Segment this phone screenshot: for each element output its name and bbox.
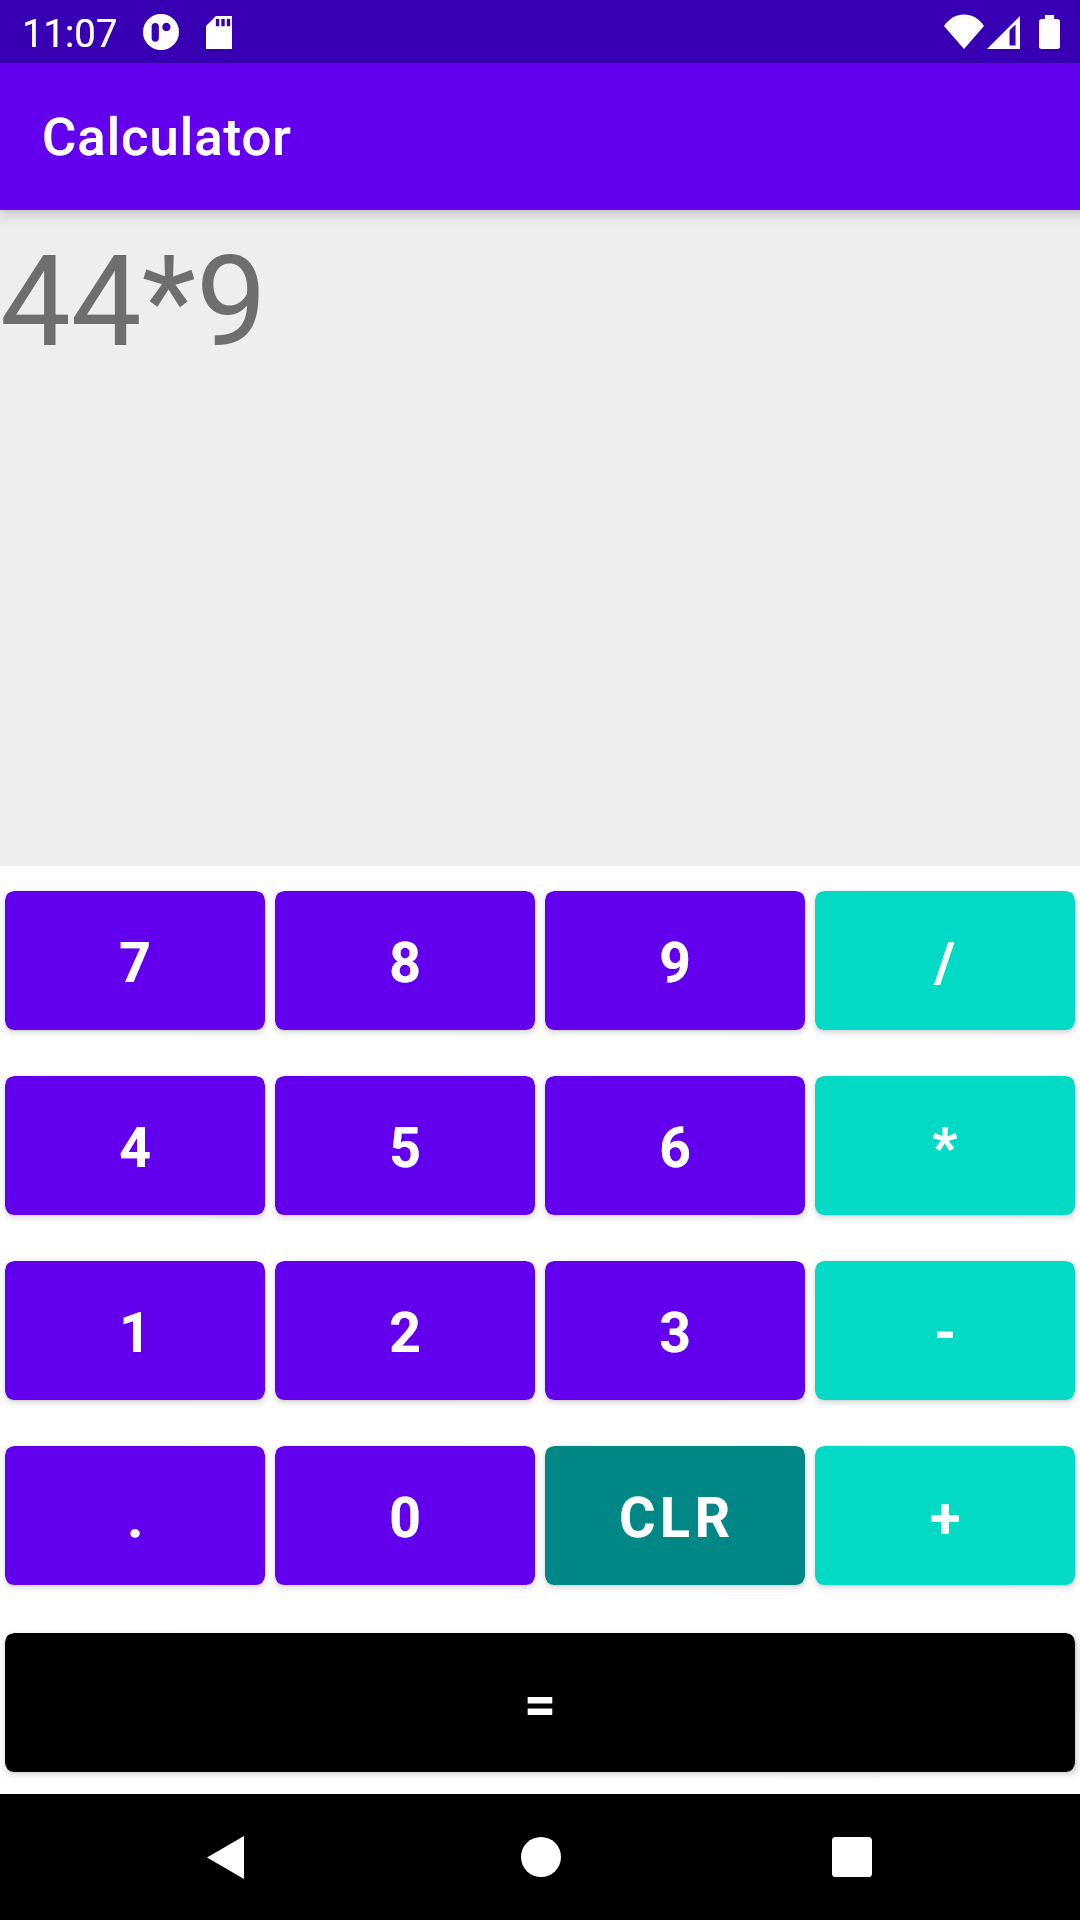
button[interactable]: / <box>815 891 1075 1030</box>
button[interactable]: Recent apps <box>698 1794 1013 1920</box>
staticText: 11:07 <box>22 11 118 56</box>
staticText: + <box>930 1486 965 1551</box>
staticText: 44*9 <box>0 228 267 376</box>
staticText: 9 <box>659 931 696 996</box>
button[interactable]: 7 <box>5 891 265 1030</box>
button[interactable]: + <box>815 1446 1075 1585</box>
button[interactable]: Back <box>67 1794 383 1920</box>
staticText: * <box>932 1116 962 1181</box>
button[interactable]: * <box>815 1076 1075 1215</box>
button[interactable]: = <box>5 1633 1075 1772</box>
staticText: 5 <box>389 1116 426 1181</box>
button[interactable]: Home <box>383 1794 698 1920</box>
button[interactable]: 6 <box>545 1076 805 1215</box>
button[interactable]: 3 <box>545 1261 805 1400</box>
staticText: 3 <box>659 1301 696 1366</box>
staticText: 6 <box>659 1116 696 1181</box>
staticText: 4 <box>119 1116 156 1181</box>
staticText: = <box>524 1673 561 1738</box>
button[interactable]: 1 <box>5 1261 265 1400</box>
button[interactable]: 8 <box>275 891 535 1030</box>
staticText: 8 <box>389 931 426 996</box>
staticText: 7 <box>119 931 156 996</box>
staticText: / <box>934 931 960 996</box>
button[interactable]: 9 <box>545 891 805 1030</box>
staticText: Calculator <box>42 106 292 168</box>
button[interactable]: - <box>815 1261 1075 1400</box>
button[interactable]: 2 <box>275 1261 535 1400</box>
button[interactable]: CLR <box>545 1446 805 1585</box>
staticText: 2 <box>389 1301 426 1366</box>
staticText: CLR <box>619 1486 735 1551</box>
button[interactable]: 4 <box>5 1076 265 1215</box>
staticText: 1 <box>119 1301 156 1366</box>
staticText: 0 <box>389 1486 426 1551</box>
staticText: . <box>127 1486 148 1551</box>
button[interactable]: 0 <box>275 1446 535 1585</box>
button[interactable]: . <box>5 1446 265 1585</box>
staticText: - <box>934 1301 961 1366</box>
button[interactable]: 5 <box>275 1076 535 1215</box>
